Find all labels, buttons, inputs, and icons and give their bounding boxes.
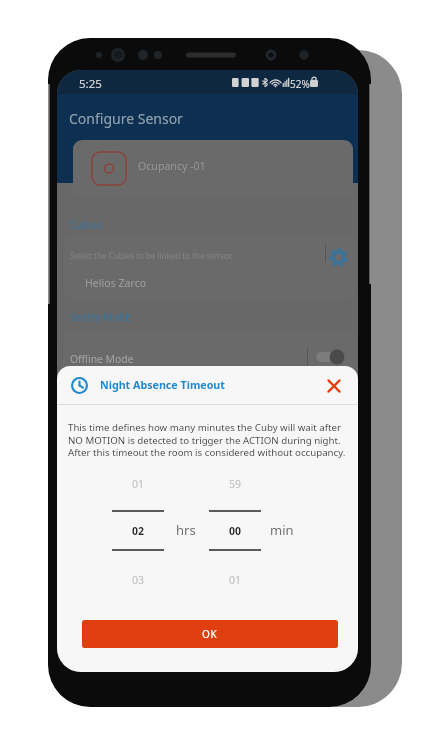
staticText: Sentry Mode	[70, 310, 131, 324]
button[interactable]: Settings	[328, 247, 349, 268]
button[interactable]: Close	[325, 377, 343, 395]
staticText: Select the Cubies to be linked to the se…	[70, 250, 233, 261]
staticText: 01	[132, 477, 145, 491]
staticText: 52%	[290, 77, 310, 91]
staticText: Night Absence Timeout	[100, 378, 225, 393]
staticText: 00	[229, 524, 242, 538]
staticText: min	[270, 521, 294, 539]
staticText: 59	[229, 477, 242, 491]
staticText: 03	[132, 573, 145, 587]
staticText: Ocupancy -01	[138, 159, 206, 173]
staticText: OK	[202, 627, 218, 641]
staticText: Helios Zarco	[85, 276, 147, 290]
staticText: This time defines how many minutes the C…	[68, 421, 346, 458]
staticText: 01	[229, 573, 242, 587]
button[interactable]: OK	[82, 620, 338, 648]
button[interactable]: Ocupancy -01	[73, 140, 353, 198]
button[interactable]: Offline Mode	[63, 330, 357, 390]
staticText: hrs	[176, 521, 196, 539]
staticText: 5:25	[79, 76, 102, 92]
staticText: Offline Mode	[70, 352, 134, 366]
button[interactable]: Select the Cubies to be linked to the se…	[63, 236, 357, 299]
staticText: Cubies	[70, 218, 103, 232]
staticText: 02	[132, 524, 145, 538]
staticText: Configure Sensor	[69, 109, 183, 128]
